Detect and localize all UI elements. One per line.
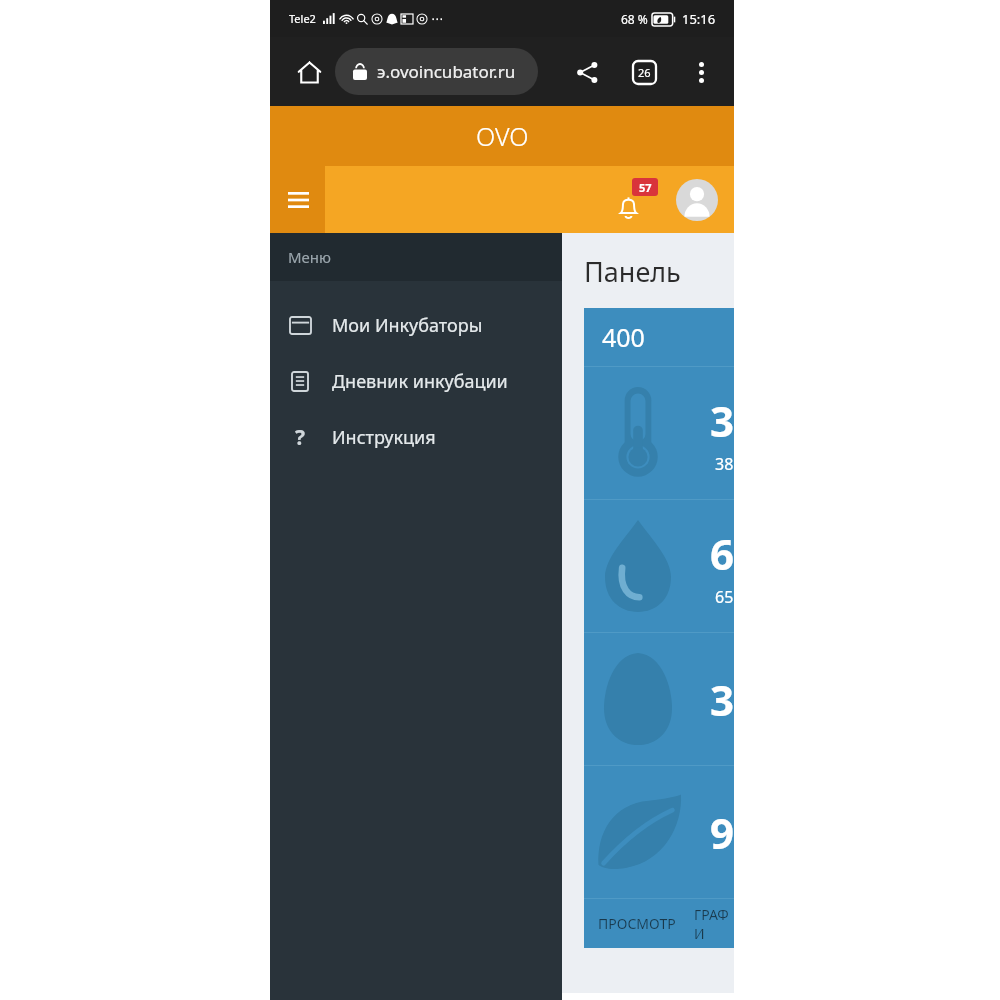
button[interactable]: 6: [584, 500, 734, 632]
button[interactable]: ПРОСМОТР: [598, 914, 676, 933]
button[interactable]: ГРАФИ: [694, 905, 734, 943]
staticText: 9: [709, 804, 734, 861]
staticText: Мои Инкубаторы: [332, 313, 483, 338]
staticText: Дневник инкубации: [332, 369, 508, 394]
staticText: OVO: [476, 119, 529, 153]
button[interactable]: э.ovoincubator.ru: [335, 48, 538, 95]
button[interactable]: Open navigation menu: [279, 181, 317, 219]
staticText: ?: [295, 423, 306, 452]
staticText: ПРОСМОТР: [598, 914, 676, 933]
staticText: ГРАФИ: [694, 905, 734, 943]
staticText: Меню: [288, 247, 332, 267]
button[interactable]: Мои Инкубаторы: [270, 297, 562, 353]
staticText: 38: [715, 453, 734, 475]
button[interactable]: Notifications, 57 new: [612, 177, 658, 223]
staticText: Панель: [584, 253, 681, 290]
staticText: 65: [715, 586, 734, 608]
button[interactable]: More options: [681, 52, 721, 92]
staticText: 6: [709, 525, 734, 582]
button[interactable]: Home: [287, 50, 331, 94]
staticText: 15:16: [682, 10, 716, 28]
button[interactable]: 3: [584, 367, 734, 499]
staticText: 68 %: [621, 11, 648, 27]
button[interactable]: Дневник инкубации: [270, 353, 562, 409]
button[interactable]: 9: [584, 766, 734, 898]
button[interactable]: 3: [584, 633, 734, 765]
staticText: 57: [639, 180, 652, 195]
staticText: 26: [638, 65, 651, 80]
button[interactable]: Account: [676, 179, 718, 221]
button[interactable]: Share: [565, 50, 609, 94]
staticText: э.ovoincubator.ru: [377, 60, 516, 83]
staticText: ⋯: [431, 12, 443, 26]
button[interactable]: ?: [270, 409, 562, 465]
staticText: 3: [709, 392, 734, 449]
staticText: 400: [602, 320, 645, 354]
staticText: 3: [709, 671, 734, 728]
staticText: Инструкция: [332, 425, 436, 450]
staticText: Tele2: [289, 11, 316, 26]
button[interactable]: Tabs, 26 open: [622, 50, 666, 94]
